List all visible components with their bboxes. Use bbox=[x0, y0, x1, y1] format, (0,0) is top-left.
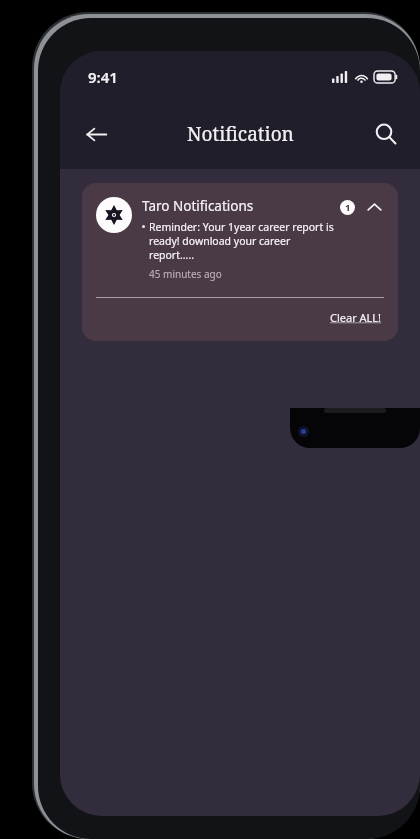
button[interactable]: Clear ALL! bbox=[328, 308, 384, 327]
staticText: Reminder: Your 1year career report is re… bbox=[149, 220, 334, 262]
button[interactable]: Back bbox=[74, 112, 118, 156]
staticText: 9:41 bbox=[88, 67, 118, 87]
staticText: 1 bbox=[345, 201, 351, 214]
button[interactable]: Search bbox=[364, 112, 408, 156]
button[interactable]: Collapse bbox=[364, 197, 384, 217]
staticText: 45 minutes ago bbox=[149, 267, 222, 281]
staticText: Clear ALL! bbox=[330, 310, 382, 325]
button[interactable]: Taro Notifications bbox=[82, 183, 398, 341]
staticText: Notification bbox=[187, 121, 294, 147]
staticText: Taro Notifications bbox=[142, 197, 254, 215]
